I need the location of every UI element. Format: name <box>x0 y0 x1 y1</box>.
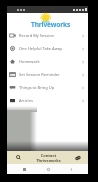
button[interactable]: Set Session Reminder <box>7 68 88 81</box>
button[interactable]: Articles <box>7 94 88 107</box>
button[interactable]: Things to Bring Up <box>7 81 88 94</box>
button[interactable]: Home <box>42 164 54 174</box>
button[interactable]: Homework <box>7 55 88 68</box>
button[interactable]: Settings <box>67 151 88 164</box>
staticText: Things to Bring Up <box>19 85 55 90</box>
staticText: Contact Thriveworks <box>36 153 61 163</box>
button[interactable]: Contact Thriveworks <box>29 151 67 164</box>
button[interactable]: Search <box>7 151 29 164</box>
button[interactable]: Record My Session <box>7 29 88 42</box>
staticText: Articles <box>19 98 33 103</box>
button[interactable]: One Helpful Take Away <box>7 42 88 55</box>
staticText: Thriveworks <box>31 20 71 29</box>
staticText: Record My Session <box>19 33 55 38</box>
staticText: One Helpful Take Away <box>19 46 63 51</box>
staticText: Homework <box>19 59 40 64</box>
staticText: Set Session Reminder <box>19 72 60 77</box>
button[interactable]: Recents <box>18 164 30 174</box>
button[interactable]: Back <box>65 164 77 174</box>
